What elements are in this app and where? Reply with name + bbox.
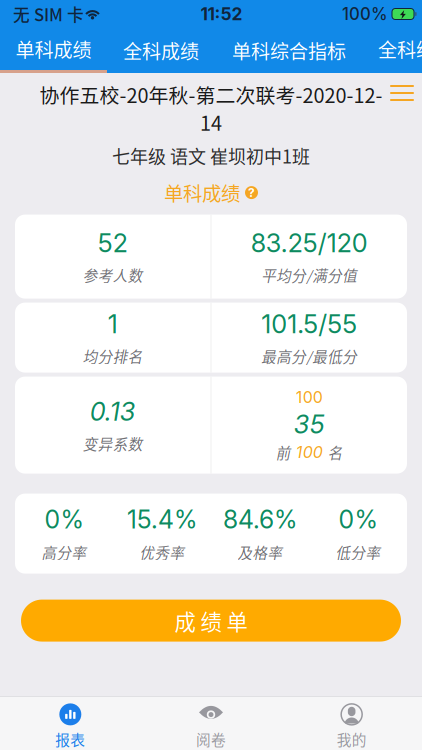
staticText: 优秀率 [139,542,184,563]
button[interactable]: 单科成绩 [164,179,258,207]
staticText: 11:52 [200,3,242,24]
staticText: 七年级 语文 崔坝初中1班 [112,142,310,169]
button[interactable]: 菜单 [382,73,422,113]
staticText: 均分排名 [83,345,143,366]
staticText: 全科综合指标 [378,35,423,63]
staticText: 及格率 [237,542,282,563]
button[interactable]: 报表 [0,703,141,750]
staticText: 100 [296,442,323,462]
button[interactable]: 成 绩 单 [21,600,401,642]
staticText: 84.6% [223,505,297,535]
staticText: 全科成绩 [123,37,199,64]
staticText: 0.13 [90,396,136,427]
staticText: 0% [338,505,377,535]
staticText: ? [248,185,255,200]
staticText: 我的 [337,728,367,750]
button[interactable]: 全科成绩 [107,29,215,71]
staticText: 单科综合指标 [232,37,346,64]
staticText: 协作五校-20年秋-第二次联考-2020-12- [39,80,382,109]
button[interactable]: 单科综合指标 [215,29,363,71]
staticText: 100% [342,4,388,24]
staticText: 1 [108,309,118,339]
staticText: 最高分/最低分 [261,345,357,366]
staticText: 前 [276,442,291,463]
staticText: 成 绩 单 [174,605,247,636]
staticText: 无 SIM 卡 [13,2,84,26]
staticText: 低分率 [335,542,380,563]
button[interactable]: 阅卷 [141,703,281,750]
button[interactable]: 全科综合指标 [378,28,423,70]
staticText: 35 [294,409,325,440]
staticText: 阅卷 [196,728,226,750]
staticText: 100 [296,388,323,407]
staticText: 变异系数 [83,433,143,454]
staticText: 14 [200,108,222,137]
staticText: 101.5/55 [261,309,357,339]
staticText: 名 [328,442,343,463]
staticText: 52 [98,228,128,258]
staticText: 0% [44,505,83,535]
staticText: 单科成绩 [15,35,91,63]
button[interactable]: 我的 [281,703,422,750]
staticText: 83.25/120 [251,228,368,258]
staticText: 报表 [55,728,85,750]
staticText: 高分率 [41,542,86,563]
staticText: 参考人数 [83,264,143,285]
staticText: 单科成绩 [164,179,240,207]
staticText: 平均分/满分值 [261,264,357,285]
button[interactable]: 单科成绩 [0,28,107,73]
staticText: 15.4% [127,505,197,535]
